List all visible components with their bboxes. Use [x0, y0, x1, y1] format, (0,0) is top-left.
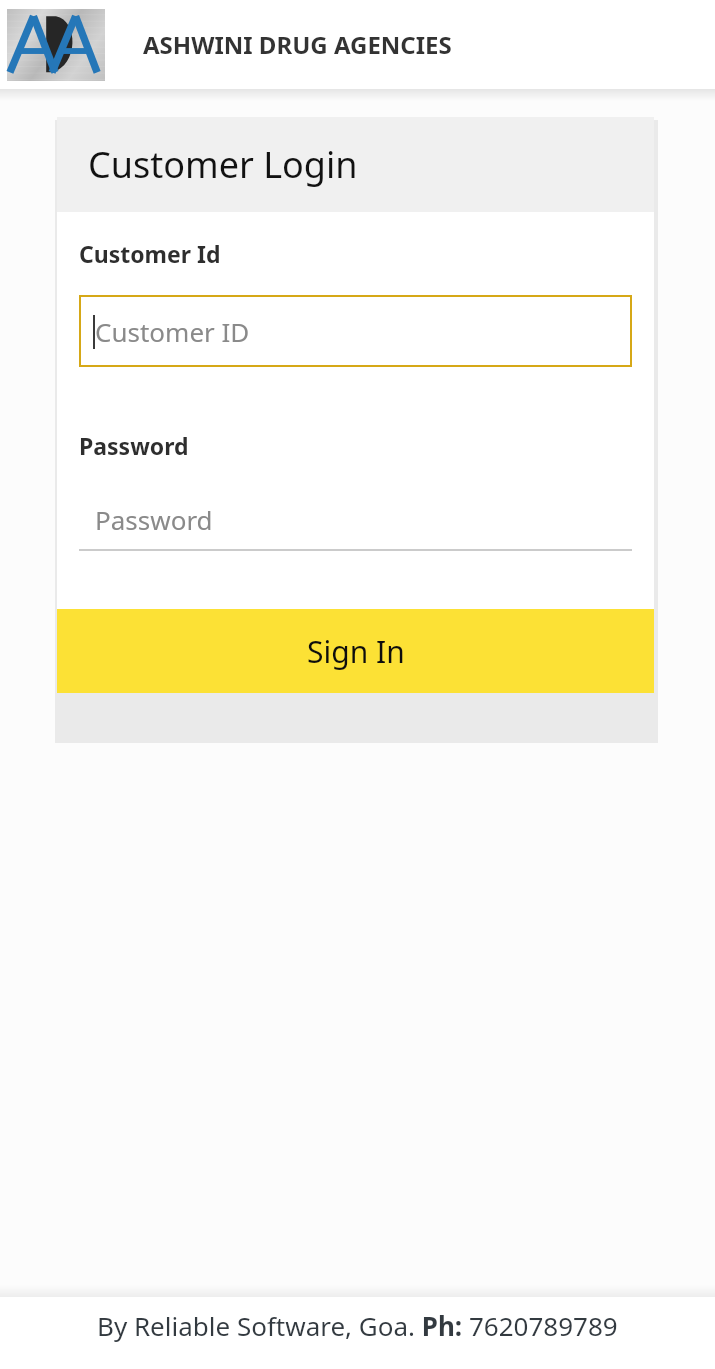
staticText: Password	[79, 430, 189, 461]
staticText: By Reliable Software, Goa. Ph: 762078978…	[97, 1308, 618, 1343]
staticText: Password	[95, 502, 213, 537]
button[interactable]: Sign In	[57, 609, 654, 693]
staticText: Customer Login	[88, 140, 358, 189]
button[interactable]: Customer ID	[79, 295, 632, 367]
staticText: Sign In	[307, 631, 405, 672]
button[interactable]: Password	[79, 490, 632, 551]
staticText: Customer Id	[79, 238, 221, 269]
staticText: Customer ID	[95, 314, 250, 349]
staticText: ASHWINI DRUG AGENCIES	[143, 28, 452, 61]
other: Ashwini Drug Agencies logo	[7, 9, 105, 81]
